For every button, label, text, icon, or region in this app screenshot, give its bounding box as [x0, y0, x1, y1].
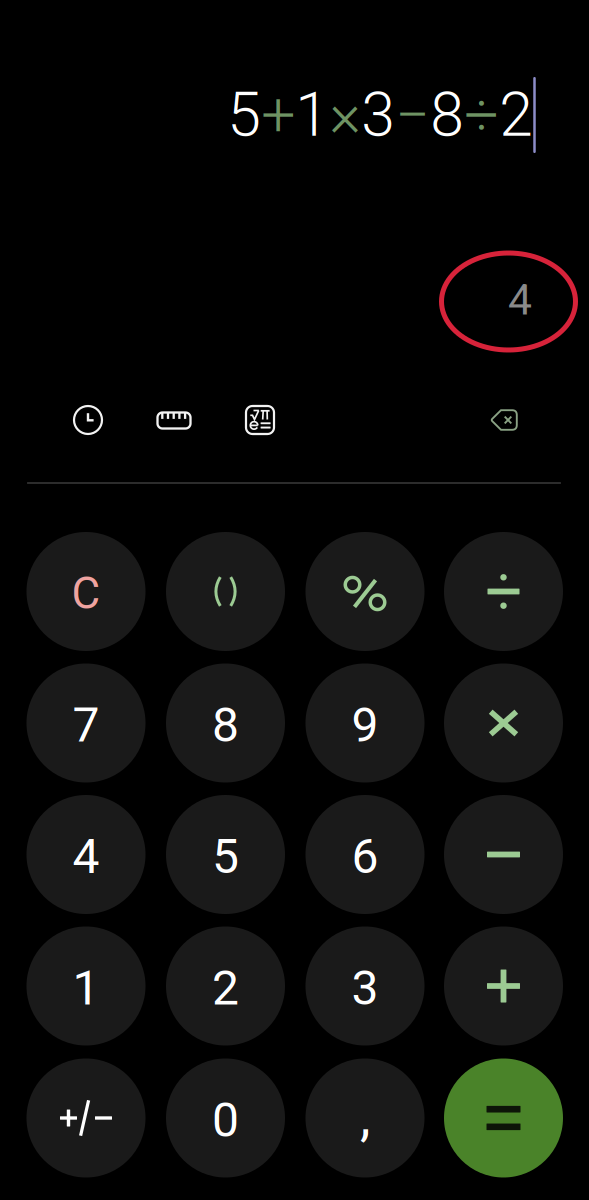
button[interactable]: 7 [26, 663, 145, 782]
staticText: 3 [361, 79, 395, 151]
staticText: 1 [72, 960, 99, 1016]
staticText: 4 [72, 828, 99, 885]
staticText: 5 [212, 828, 239, 885]
button[interactable] [444, 1058, 563, 1177]
button[interactable]: Scientific [238, 398, 282, 442]
button[interactable]: 4 [26, 795, 145, 914]
button[interactable]: 8 [166, 663, 285, 782]
button[interactable]: 2 [166, 926, 285, 1045]
staticText: × [329, 79, 361, 151]
staticText: ÷ [464, 79, 499, 151]
button[interactable]: C [26, 532, 145, 651]
staticText: 1 [295, 79, 329, 151]
staticText: 9 [351, 697, 378, 753]
staticText: 2 [499, 79, 533, 151]
staticText: 8 [430, 79, 464, 151]
staticText: 3 [351, 960, 378, 1016]
button[interactable] [444, 663, 563, 782]
staticText: , [360, 1086, 370, 1148]
button[interactable]: 0 [166, 1058, 285, 1177]
staticText: + [261, 79, 295, 151]
staticText: 7 [72, 697, 99, 753]
staticText: 6 [351, 828, 378, 885]
button[interactable]: 6 [305, 795, 424, 914]
button[interactable]: 9 [305, 663, 424, 782]
staticText: C [71, 568, 100, 619]
button[interactable]: 5 [166, 795, 285, 914]
button[interactable] [444, 926, 563, 1045]
button[interactable] [305, 532, 424, 651]
button[interactable] [26, 1058, 145, 1177]
staticText: 2 [212, 960, 239, 1016]
staticText: − [395, 79, 430, 151]
button[interactable]: 3 [305, 926, 424, 1045]
button[interactable] [444, 532, 563, 651]
button[interactable]: , [305, 1058, 424, 1177]
button[interactable]: History [66, 398, 110, 442]
button[interactable]: Unit converter [152, 398, 196, 442]
staticText: 8 [212, 697, 239, 753]
button[interactable]: Backspace [482, 398, 526, 442]
staticText: 4 [508, 275, 532, 325]
button[interactable] [166, 532, 285, 651]
button[interactable]: 1 [26, 926, 145, 1045]
staticText: 5 [227, 79, 261, 151]
button[interactable] [444, 795, 563, 914]
staticText: 0 [212, 1092, 239, 1148]
